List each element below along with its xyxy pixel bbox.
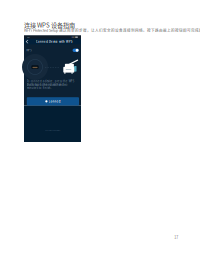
staticText: 9:41 [27, 36, 30, 38]
staticText: 17 [174, 234, 178, 240]
staticText: minutes to finish. [27, 86, 52, 90]
button[interactable]: Connect [27, 97, 79, 105]
staticText: Connect Device with WPS [36, 40, 72, 43]
staticText: Learn more about WPS [44, 129, 60, 131]
staticText: ▮▮▮ [72, 36, 75, 38]
button[interactable]: WPS [24, 48, 81, 53]
staticText: To connect a device, press the WPS butto… [27, 79, 74, 86]
staticText: then tap Connect within two [27, 83, 68, 86]
staticText: 连接 WPS 设备指南 [24, 20, 75, 29]
staticText: Connect [48, 100, 60, 103]
button[interactable]: Back [24, 39, 30, 44]
staticText: WPS [26, 48, 31, 52]
staticText: Wi-Fi Protected Setup 通过简单的步骤，让人们安全的设备连接… [24, 28, 200, 33]
